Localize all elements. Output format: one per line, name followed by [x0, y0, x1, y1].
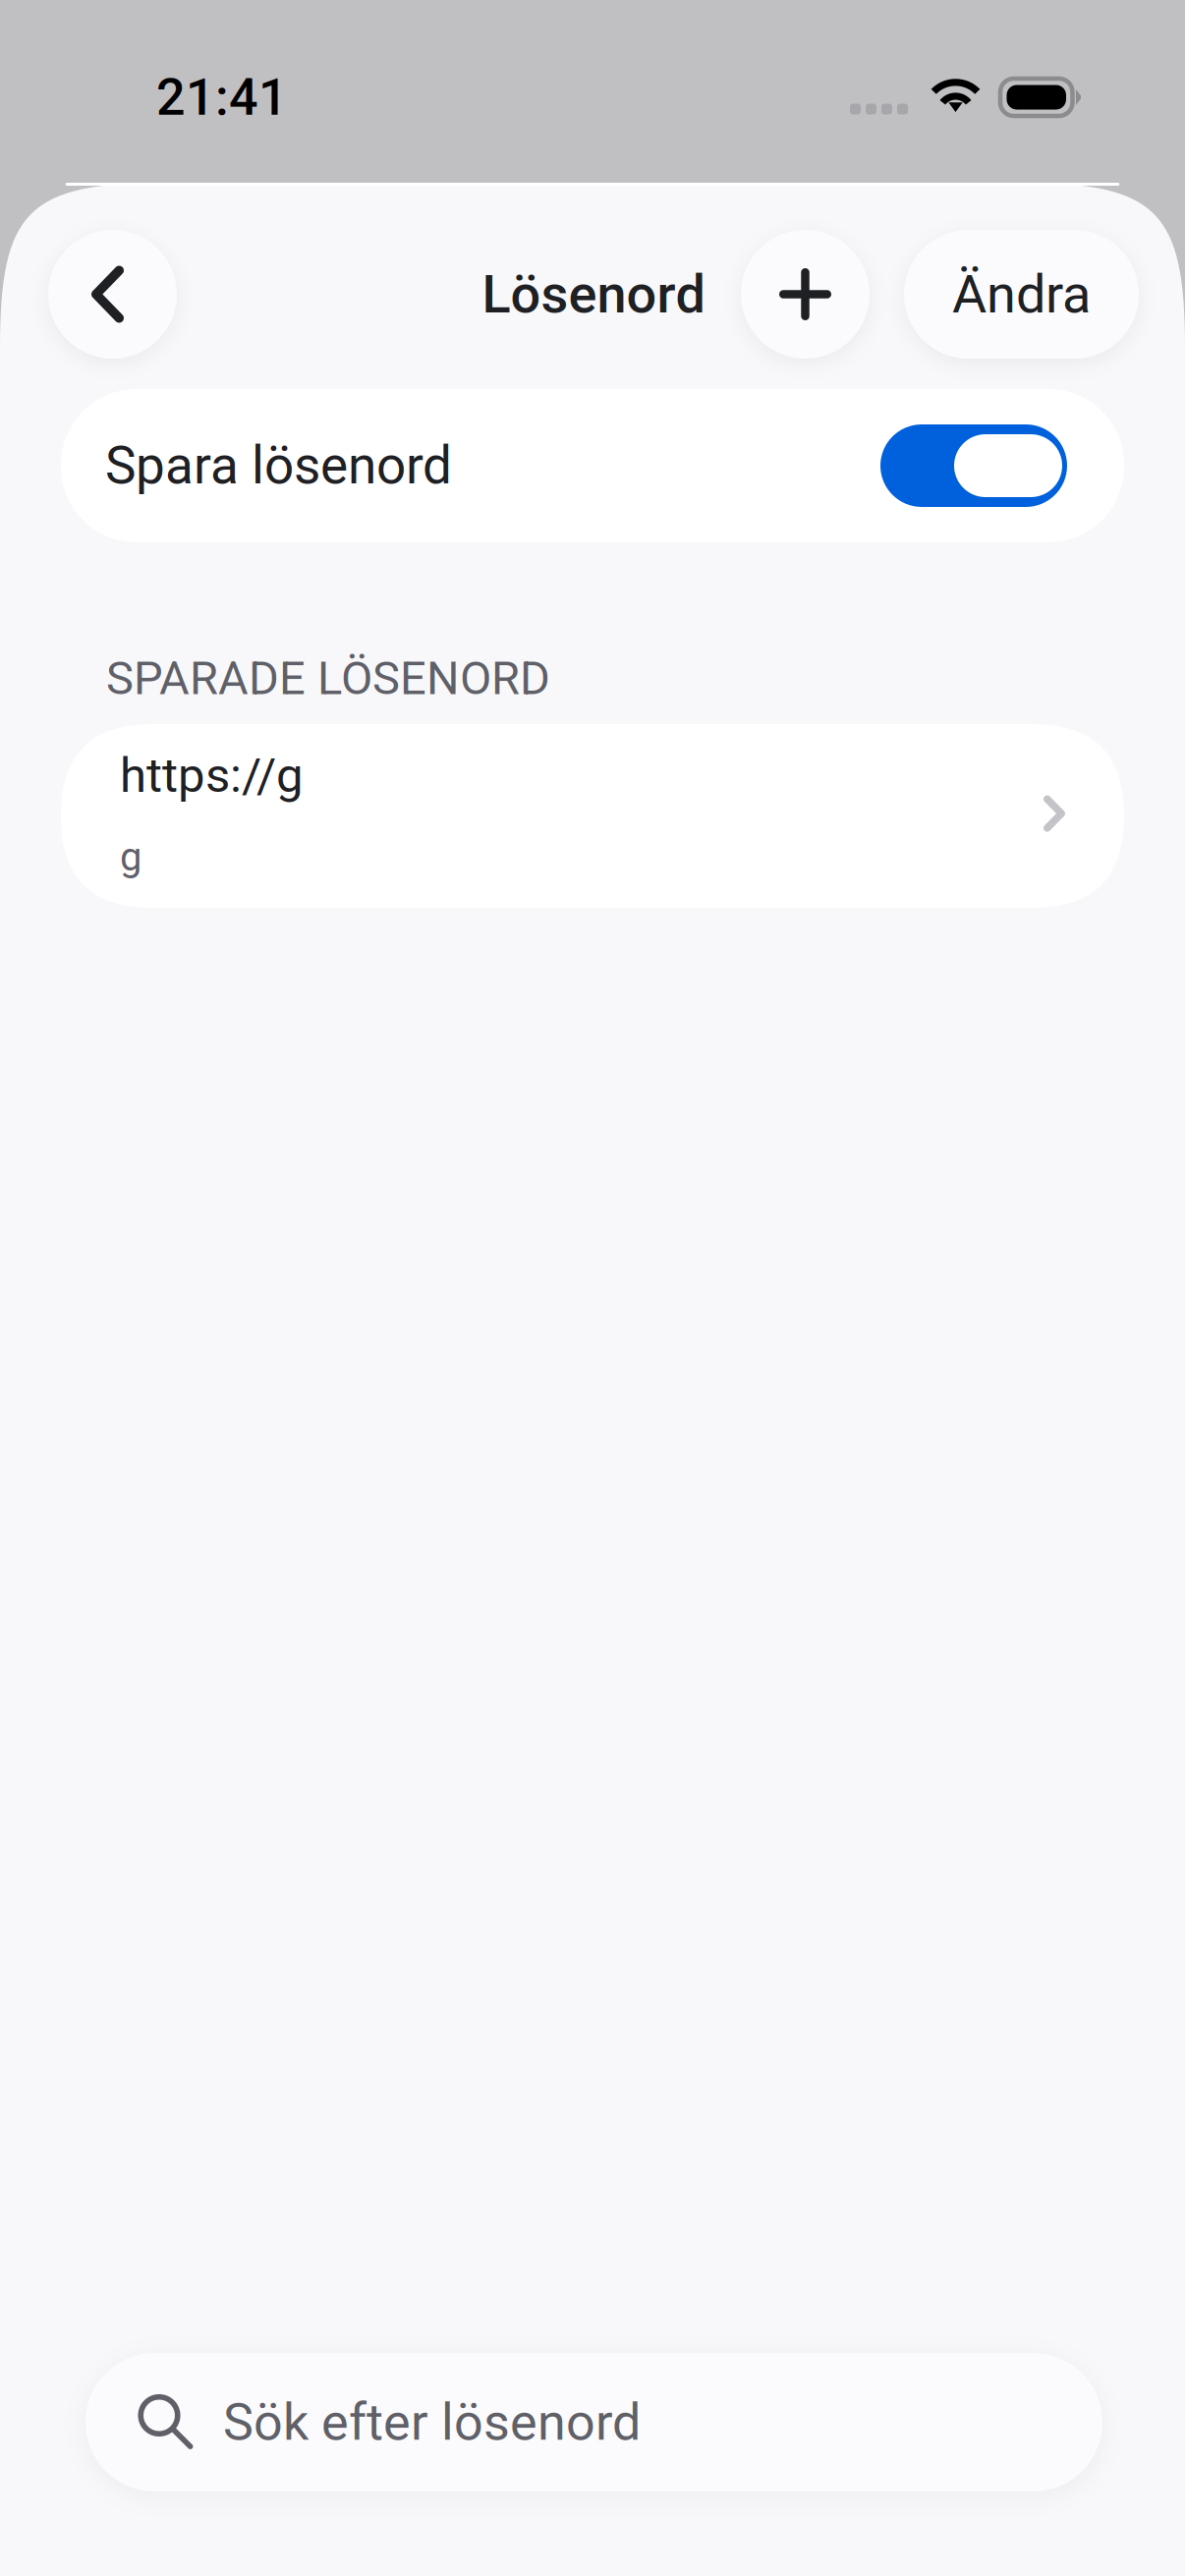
- button[interactable]: Lägg till: [741, 230, 870, 359]
- staticText: 21:41: [156, 67, 288, 127]
- button[interactable]: Sök efter lösenord: [85, 2353, 1102, 2492]
- staticText: Sök efter lösenord: [223, 2392, 641, 2452]
- staticText: g: [120, 834, 141, 880]
- staticText: Spara lösenord: [105, 435, 452, 496]
- button[interactable]: Spara lösenord: [61, 389, 1124, 542]
- button[interactable]: Tillbaka: [48, 230, 177, 359]
- staticText: SPARADE LÖSENORD: [106, 651, 550, 706]
- button[interactable]: https://g: [61, 724, 1124, 908]
- staticText: Lösenord: [482, 263, 705, 325]
- staticText: https://g: [120, 747, 304, 803]
- button[interactable]: Ändra: [904, 230, 1139, 359]
- staticText: Ändra: [952, 263, 1091, 325]
